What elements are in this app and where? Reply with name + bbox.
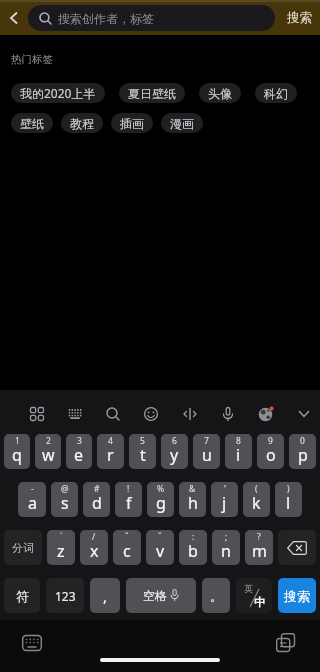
button[interactable] <box>181 396 199 432</box>
staticText: / <box>92 531 96 543</box>
button[interactable] <box>219 396 237 432</box>
button[interactable]: 插画 <box>111 113 153 133</box>
button[interactable]: 搜索创作者，标签 <box>28 5 275 31</box>
button[interactable]: 5 <box>129 434 156 469</box>
button[interactable] <box>18 630 46 656</box>
staticText: # <box>94 483 100 495</box>
button[interactable]: ˇ <box>113 530 141 565</box>
staticText: y <box>170 444 179 466</box>
button[interactable] <box>28 396 46 432</box>
button[interactable]: ' <box>211 482 238 517</box>
staticText: r <box>107 444 114 466</box>
button[interactable]: 科幻 <box>255 83 297 103</box>
staticText: 0 <box>300 435 305 447</box>
button[interactable]: # <box>83 482 110 517</box>
staticText: 8 <box>236 435 241 447</box>
staticText: ' <box>224 483 226 495</box>
button[interactable]: ` <box>47 530 75 565</box>
staticText: : <box>192 531 195 543</box>
staticText: f <box>126 492 132 514</box>
staticText: c <box>123 540 131 562</box>
staticText: g <box>156 492 166 514</box>
button[interactable]: 漫画 <box>161 113 203 133</box>
button[interactable]: 夏日壁纸 <box>119 83 185 103</box>
button[interactable] <box>66 396 84 432</box>
button[interactable]: 3 <box>66 434 92 469</box>
button[interactable]: / <box>80 530 108 565</box>
button[interactable]: 英 <box>236 578 272 613</box>
staticText: % <box>157 483 165 495</box>
staticText: ? <box>257 531 261 543</box>
staticText: ; <box>225 531 228 543</box>
button[interactable]: 6 <box>161 434 188 469</box>
button[interactable]: ˇ <box>146 530 174 565</box>
button[interactable]: 4 <box>97 434 124 469</box>
staticText: h <box>188 492 198 514</box>
staticText: ) <box>287 483 290 495</box>
button[interactable]: 。 <box>202 578 230 613</box>
staticText: 。 <box>210 588 223 604</box>
button[interactable] <box>104 396 122 432</box>
staticText: - <box>31 483 34 495</box>
button[interactable]: 8 <box>225 434 252 469</box>
button[interactable]: ? <box>245 530 273 565</box>
button[interactable]: ; <box>212 530 240 565</box>
staticText: o <box>266 444 276 466</box>
button[interactable]: 123 <box>46 578 84 613</box>
button[interactable]: : <box>179 530 207 565</box>
button[interactable]: 1 <box>4 434 30 469</box>
staticText: 科幻 <box>264 86 288 101</box>
button[interactable]: ( <box>243 482 270 517</box>
button[interactable]: 0 <box>289 434 316 469</box>
staticText: 6 <box>172 435 177 447</box>
button[interactable]: 搜索 <box>278 578 316 613</box>
button[interactable]: 头像 <box>199 83 241 103</box>
button[interactable]: 2 <box>35 434 61 469</box>
staticText: e <box>74 444 84 466</box>
button[interactable]: & <box>179 482 206 517</box>
staticText: ( <box>255 483 258 495</box>
staticText: b <box>188 540 198 562</box>
staticText: , <box>103 586 108 606</box>
staticText: ˇ <box>158 531 162 543</box>
button[interactable]: 教程 <box>61 113 103 133</box>
staticText: 3 <box>77 435 82 447</box>
staticText: 分词 <box>12 541 34 555</box>
button[interactable]: 7 <box>193 434 220 469</box>
button[interactable] <box>272 630 300 656</box>
button[interactable]: ! <box>115 482 142 517</box>
staticText: 英 <box>244 583 253 594</box>
staticText: 中 <box>254 595 265 609</box>
staticText: 空格 <box>143 588 167 603</box>
staticText: t <box>140 444 146 466</box>
button[interactable]: 9 <box>257 434 284 469</box>
staticText: 搜索 <box>287 10 312 26</box>
button[interactable]: 空格 <box>126 578 196 613</box>
staticText: 壁纸 <box>20 116 44 131</box>
button[interactable]: % <box>147 482 174 517</box>
staticText: w <box>42 444 55 466</box>
staticText: v <box>156 540 165 562</box>
staticText: a <box>28 492 37 514</box>
button[interactable] <box>257 396 275 432</box>
staticText: 搜索创作者，标签 <box>58 11 154 26</box>
button[interactable]: 壁纸 <box>11 113 53 133</box>
button[interactable]: 我的2020上半 <box>11 83 105 103</box>
staticText: 教程 <box>70 116 94 131</box>
button[interactable]: 分词 <box>4 530 42 565</box>
staticText: 2 <box>46 435 51 447</box>
staticText: i <box>236 444 241 466</box>
button[interactable]: @ <box>51 482 78 517</box>
button[interactable]: ) <box>275 482 302 517</box>
staticText: q <box>12 444 22 466</box>
button[interactable]: 搜索 <box>275 10 320 26</box>
button[interactable]: - <box>18 482 46 517</box>
button[interactable] <box>142 396 160 432</box>
button[interactable]: , <box>90 578 120 613</box>
button[interactable]: 符 <box>4 578 40 613</box>
button[interactable] <box>0 0 28 35</box>
staticText: 123 <box>55 588 76 604</box>
button[interactable] <box>278 530 316 565</box>
button[interactable] <box>295 396 313 432</box>
staticText: ! <box>127 483 130 495</box>
